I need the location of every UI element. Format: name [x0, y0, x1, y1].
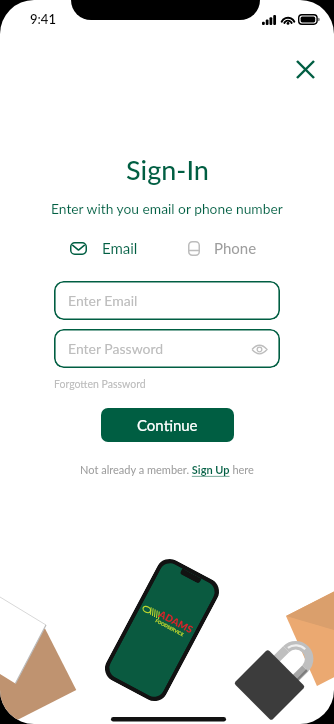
button[interactable]: Email [70, 239, 138, 257]
staticText: Enter with you email or phone number [51, 200, 283, 217]
button[interactable]: Continue [101, 408, 234, 442]
button[interactable]: Close [290, 54, 320, 84]
button[interactable]: Not already a member. Sign Up here [80, 463, 254, 476]
staticText: Continue [137, 416, 198, 434]
staticText: Phone [214, 239, 257, 257]
staticText: FOODSERVICE [155, 618, 185, 638]
staticText: Enter Email [68, 292, 138, 309]
staticText: Enter Password [68, 340, 164, 357]
button[interactable]: Enter Email [54, 281, 280, 320]
staticText: Sign-In [126, 153, 209, 185]
staticText: Not already a member. Sign Up here [80, 463, 254, 476]
staticText: 9:41 [30, 11, 56, 27]
staticText: ADAMS [157, 608, 195, 636]
button[interactable]: Forgotten Password [54, 378, 146, 391]
button[interactable]: Show password [248, 338, 270, 360]
button[interactable]: Enter Password [54, 329, 280, 368]
button[interactable]: Phone [188, 239, 257, 257]
staticText: Email [102, 239, 138, 257]
